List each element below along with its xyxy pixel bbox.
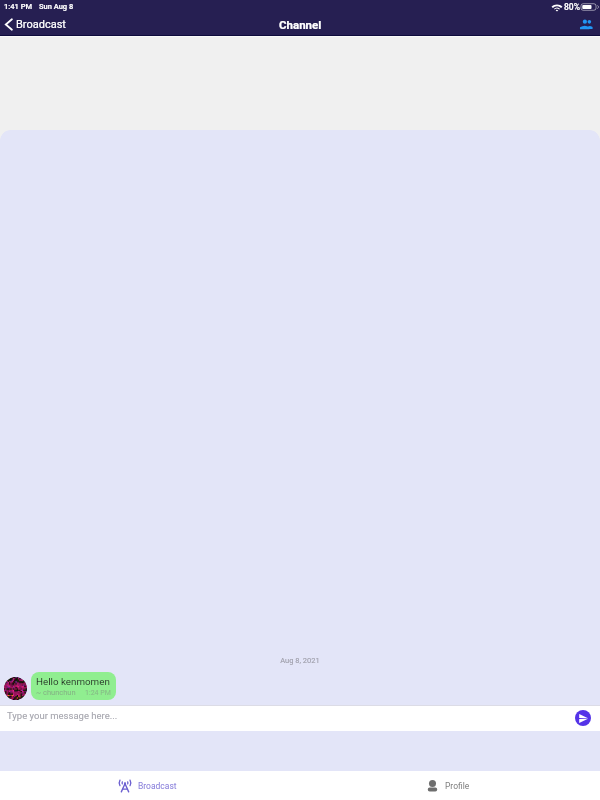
staticText: 1:41 PM [4, 2, 33, 11]
staticText: ~ chunchun [36, 688, 76, 697]
staticText: Profile [445, 781, 470, 791]
button[interactable]: Broadcast [0, 771, 300, 800]
staticText: Aug 8, 2021 [280, 656, 320, 665]
staticText: Sun Aug 8 [39, 2, 74, 11]
button[interactable]: Profile [300, 771, 600, 800]
button[interactable]: Broadcast [0, 16, 74, 33]
staticText: Type your message here... [7, 710, 118, 721]
button[interactable]: Hello kenmomen [31, 672, 116, 700]
staticText: Hello kenmomen [36, 676, 110, 687]
staticText: Channel [279, 18, 322, 31]
button[interactable]: Members [572, 16, 600, 33]
button[interactable]: Send [575, 710, 591, 726]
staticText: 80% [564, 2, 580, 12]
staticText: Broadcast [16, 18, 66, 31]
button[interactable]: Type your message here... [0, 706, 570, 731]
staticText: Broadcast [138, 781, 177, 791]
staticText: 1:24 PM [85, 689, 111, 697]
